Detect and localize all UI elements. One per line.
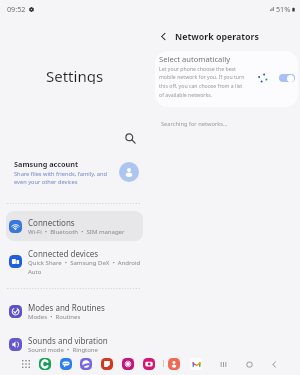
- staticText: Modes • Routines: [28, 313, 81, 321]
- button[interactable]: Select automatically: [155, 51, 298, 107]
- button[interactable]: Phone: [39, 358, 51, 370]
- staticText: Modes and Routines: [28, 302, 105, 313]
- button[interactable]: Search: [120, 128, 140, 148]
- staticText: Sounds and vibration: [28, 335, 108, 346]
- button[interactable]: Messages: [60, 358, 72, 370]
- button[interactable]: Back: [155, 28, 172, 45]
- staticText: Wi-Fi • Bluetooth • SIM manager: [28, 228, 125, 236]
- button[interactable]: Contacts: [168, 358, 180, 370]
- staticText: Quick Share • Samsung DeX • Android Auto: [28, 259, 141, 275]
- staticText: Samsung account: [14, 159, 79, 169]
- button[interactable]: All apps: [18, 356, 33, 371]
- button[interactable]: Connected devices: [6, 243, 143, 279]
- staticText: Connections: [28, 217, 75, 228]
- button[interactable]: Recents: [216, 357, 230, 371]
- staticText: Sound mode • Ringtone: [28, 346, 98, 354]
- staticText: 09:52: [7, 4, 26, 14]
- staticText: Share files with friends, family, and ev…: [14, 170, 108, 186]
- staticText: Network operators: [175, 31, 259, 43]
- button[interactable]: Modes and Routines: [6, 296, 143, 326]
- button[interactable]: Camera: [143, 358, 155, 370]
- staticText: Searching for networks...: [161, 120, 228, 128]
- button[interactable]: Select automatically: [279, 74, 295, 82]
- button[interactable]: Home: [242, 357, 256, 371]
- button[interactable]: Connections: [6, 211, 143, 241]
- staticText: Connected devices: [28, 248, 99, 259]
- staticText: Let your phone choose the best mobile ne…: [159, 65, 245, 98]
- button[interactable]: Internet: [80, 358, 92, 370]
- button[interactable]: Gallery: [122, 358, 134, 370]
- button[interactable]: Back: [267, 357, 281, 371]
- button[interactable]: Sounds and vibration: [6, 329, 143, 359]
- staticText: Settings: [46, 66, 104, 84]
- staticText: Select automatically: [159, 54, 231, 64]
- button[interactable]: Gmail: [190, 358, 202, 370]
- button[interactable]: Notes: [101, 358, 113, 370]
- staticText: 51%: [276, 4, 291, 14]
- button[interactable]: Samsung account: [0, 152, 150, 192]
